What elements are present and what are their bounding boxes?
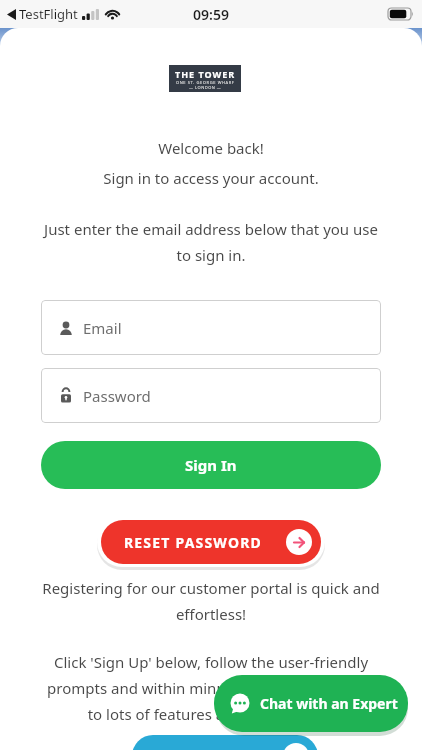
button[interactable]: Sign In	[41, 441, 381, 489]
staticText: Email	[83, 318, 122, 338]
button[interactable]: RESET PASSWORD	[101, 520, 321, 564]
staticText: THE TOWER	[175, 68, 236, 80]
staticText: — LONDON —	[189, 85, 222, 90]
staticText: ONE ST. GEORGE WHARF	[176, 80, 235, 85]
staticText: Just enter the email address below that …	[44, 219, 378, 266]
button[interactable]: Email	[41, 300, 381, 355]
staticText: Password	[83, 386, 151, 406]
staticText: RESET PASSWORD	[106, 533, 280, 552]
button[interactable]: SIGN UP	[132, 735, 318, 750]
staticText: 09:59	[193, 5, 229, 24]
button[interactable]: Chat with an Expert	[214, 675, 408, 732]
staticText: Chat with an Expert	[260, 694, 398, 713]
staticText: Welcome back! Sign in to access your acc…	[103, 138, 319, 188]
staticText: Sign In	[185, 455, 237, 475]
button[interactable]: Password	[41, 368, 381, 423]
staticText: Registering for our customer portal is q…	[42, 578, 380, 625]
staticText: TestFlight	[19, 5, 78, 23]
staticText: Click 'Sign Up' below, follow the user-f…	[47, 652, 375, 725]
